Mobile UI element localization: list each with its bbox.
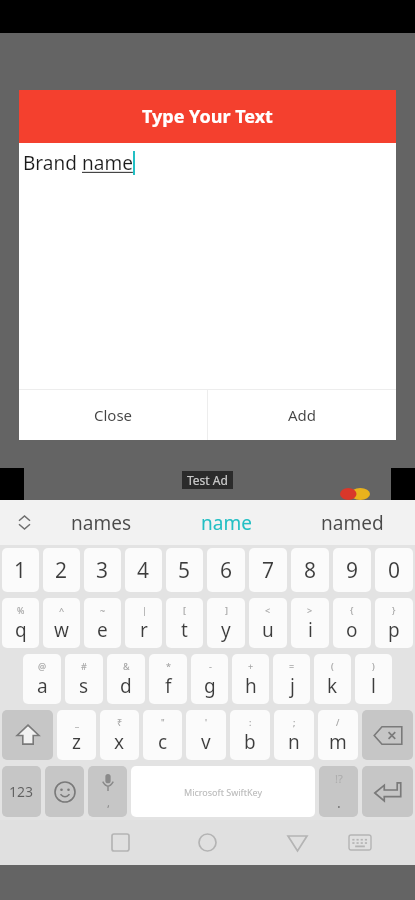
button[interactable]: Home <box>187 820 227 865</box>
staticText: } <box>392 604 396 616</box>
button[interactable]: ^ <box>43 598 80 648</box>
button[interactable]: " <box>143 710 182 760</box>
button[interactable]: # <box>65 654 103 704</box>
staticText: 0 <box>388 556 401 585</box>
staticText: c <box>158 729 168 755</box>
staticText: Type Your Text <box>142 104 273 129</box>
staticText: 5 <box>178 556 191 585</box>
button[interactable]: & <box>107 654 145 704</box>
button[interactable]: } <box>375 598 413 648</box>
staticText: Close <box>94 405 133 425</box>
button[interactable]: @ <box>23 654 61 704</box>
button[interactable]: ~ <box>84 598 121 648</box>
staticText: - <box>209 660 212 672</box>
staticText: name <box>82 150 133 176</box>
button[interactable]: 6 <box>207 548 245 592</box>
staticText: h <box>245 673 257 699</box>
staticText: m <box>329 729 347 755</box>
staticText: l <box>371 673 376 699</box>
button[interactable]: named <box>289 500 415 545</box>
button[interactable]: > <box>291 598 329 648</box>
button[interactable]: name <box>163 500 289 545</box>
button[interactable]: { <box>333 598 371 648</box>
staticText: z <box>72 729 81 755</box>
button[interactable]: ₹ <box>100 710 139 760</box>
staticText: d <box>120 673 132 699</box>
button[interactable]: ( <box>314 654 351 704</box>
button[interactable]: Shift <box>2 710 53 760</box>
button[interactable]: Keyboard <box>340 820 380 865</box>
staticText: w <box>54 617 69 643</box>
staticText: n <box>288 729 300 755</box>
button[interactable]: < <box>249 598 287 648</box>
button[interactable]: Backspace <box>362 710 413 760</box>
staticText: + <box>248 660 254 672</box>
staticText: " <box>161 716 165 728</box>
button[interactable]: 1 <box>2 548 39 592</box>
button[interactable]: 7 <box>249 548 287 592</box>
button[interactable]: Add <box>208 390 396 440</box>
button[interactable]: ] <box>207 598 245 648</box>
button[interactable]: 9 <box>333 548 371 592</box>
staticText: ; <box>293 716 296 728</box>
button[interactable]: _ <box>57 710 96 760</box>
staticText: ( <box>331 660 334 672</box>
button[interactable]: [ <box>166 598 203 648</box>
button[interactable]: | <box>125 598 162 648</box>
staticText: 2 <box>55 556 68 585</box>
staticText: t <box>181 617 188 643</box>
button[interactable]: 5 <box>166 548 203 592</box>
staticText: i <box>308 617 313 643</box>
staticText: ' <box>205 716 208 728</box>
staticText: named <box>321 510 384 536</box>
button[interactable]: + <box>232 654 269 704</box>
button[interactable]: Close <box>19 390 207 440</box>
button[interactable]: Expand suggestions <box>10 500 38 545</box>
button[interactable]: 123 <box>2 766 41 817</box>
staticText: ^ <box>59 604 65 616</box>
button[interactable]: ) <box>355 654 392 704</box>
button[interactable]: Back <box>277 820 317 865</box>
staticText: _ <box>75 716 79 728</box>
button[interactable]: 0 <box>375 548 413 592</box>
button[interactable]: 3 <box>84 548 121 592</box>
staticText: u <box>262 617 274 643</box>
button[interactable]: Voice input <box>88 766 127 817</box>
staticText: ] <box>225 604 228 616</box>
staticText: 7 <box>262 556 275 585</box>
staticText: x <box>114 729 125 755</box>
other: Enter <box>374 782 401 802</box>
button[interactable]: 2 <box>43 548 80 592</box>
staticText: g <box>204 673 216 699</box>
other: Emoji <box>54 781 76 803</box>
button[interactable]: 8 <box>291 548 329 592</box>
staticText: 6 <box>220 556 233 585</box>
button[interactable]: Microsoft SwiftKey <box>131 766 315 817</box>
button[interactable]: Emoji <box>45 766 84 817</box>
button[interactable]: ; <box>274 710 314 760</box>
staticText: . <box>337 793 341 812</box>
button[interactable]: ' <box>186 710 226 760</box>
staticText: names <box>71 510 131 536</box>
other: Backspace <box>373 725 403 746</box>
button[interactable]: names <box>38 500 163 545</box>
button[interactable]: - <box>191 654 228 704</box>
staticText: b <box>244 729 256 755</box>
staticText: !? <box>335 771 343 786</box>
button[interactable]: !? <box>319 766 358 817</box>
staticText: v <box>201 729 211 755</box>
button[interactable]: Recents <box>100 820 140 865</box>
button[interactable]: * <box>149 654 187 704</box>
button[interactable]: % <box>2 598 39 648</box>
button[interactable]: / <box>318 710 358 760</box>
button[interactable]: Enter <box>362 766 413 817</box>
button[interactable]: 4 <box>125 548 162 592</box>
staticText: , <box>107 795 110 810</box>
staticText: [ <box>183 604 186 616</box>
staticText: : <box>249 716 252 728</box>
button[interactable]: Brand <box>19 143 396 389</box>
other: Shift <box>15 722 41 748</box>
staticText: | <box>142 604 147 616</box>
button[interactable]: : <box>230 710 270 760</box>
button[interactable]: = <box>273 654 310 704</box>
